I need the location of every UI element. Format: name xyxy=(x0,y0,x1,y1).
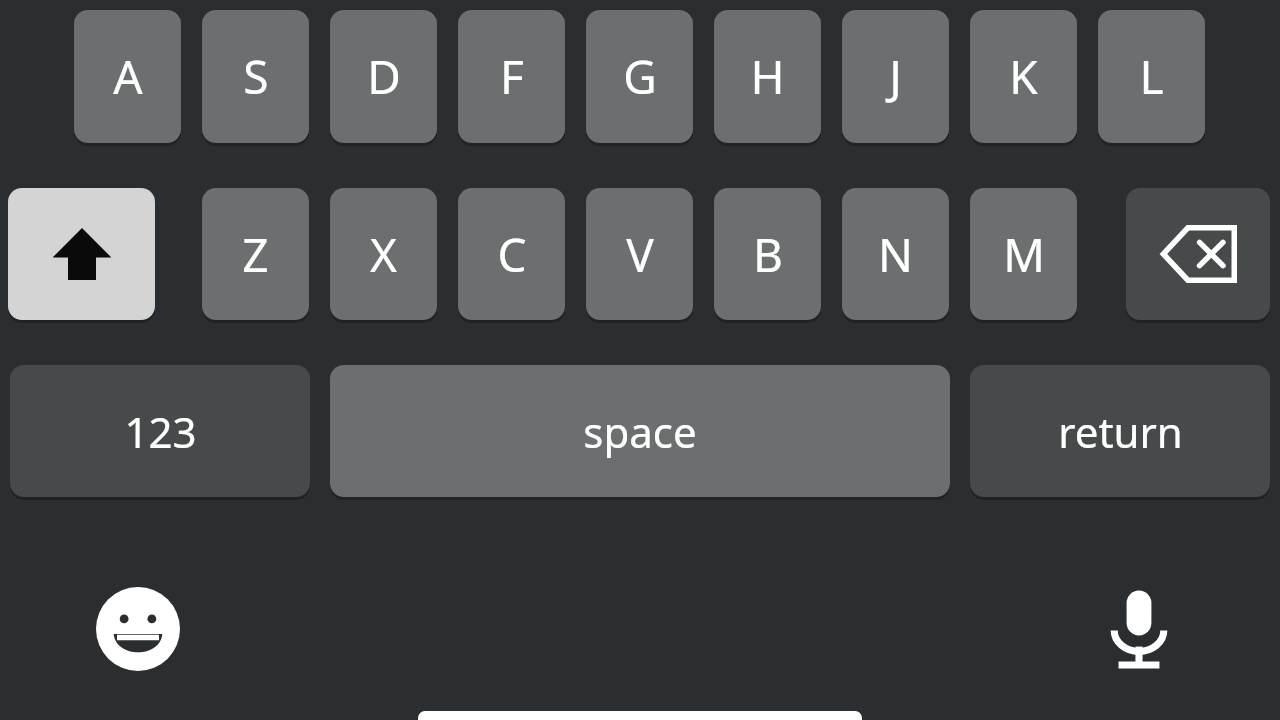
staticText: A xyxy=(113,45,143,108)
staticText: M xyxy=(1003,223,1045,286)
staticText: return xyxy=(1058,403,1183,460)
button[interactable]: L xyxy=(1098,10,1205,143)
button[interactable]: H xyxy=(714,10,821,143)
button[interactable]: F xyxy=(458,10,565,143)
staticText: space xyxy=(583,403,697,460)
button[interactable]: M xyxy=(970,188,1077,320)
button[interactable]: Shift xyxy=(8,188,155,320)
button[interactable]: return xyxy=(970,365,1270,497)
staticText: K xyxy=(1009,45,1038,108)
staticText: G xyxy=(623,45,657,108)
button[interactable]: K xyxy=(970,10,1077,143)
staticText: X xyxy=(370,223,397,286)
button[interactable]: G xyxy=(586,10,693,143)
staticText: S xyxy=(243,45,269,108)
button[interactable]: Emoji keyboard xyxy=(96,587,180,671)
button[interactable]: C xyxy=(458,188,565,320)
button[interactable]: J xyxy=(842,10,949,143)
button[interactable]: N xyxy=(842,188,949,320)
staticText: H xyxy=(750,45,785,108)
staticText: J xyxy=(889,45,902,108)
button[interactable]: Z xyxy=(202,188,309,320)
button[interactable]: B xyxy=(714,188,821,320)
button[interactable]: D xyxy=(330,10,437,143)
button[interactable]: space xyxy=(330,365,950,497)
staticText: 123 xyxy=(124,403,197,460)
button[interactable]: A xyxy=(74,10,181,143)
staticText: B xyxy=(753,223,783,286)
button[interactable]: V xyxy=(586,188,693,320)
staticText: D xyxy=(367,45,401,108)
button[interactable]: Backspace xyxy=(1126,188,1270,320)
button[interactable]: Voice input xyxy=(1098,587,1180,671)
staticText: C xyxy=(497,223,527,286)
staticText: Z xyxy=(242,223,269,286)
button[interactable]: X xyxy=(330,188,437,320)
button[interactable]: S xyxy=(202,10,309,143)
button[interactable]: 123 xyxy=(10,365,310,497)
staticText: L xyxy=(1139,45,1164,108)
staticText: V xyxy=(626,223,654,286)
staticText: N xyxy=(878,223,913,286)
staticText: F xyxy=(500,45,524,108)
